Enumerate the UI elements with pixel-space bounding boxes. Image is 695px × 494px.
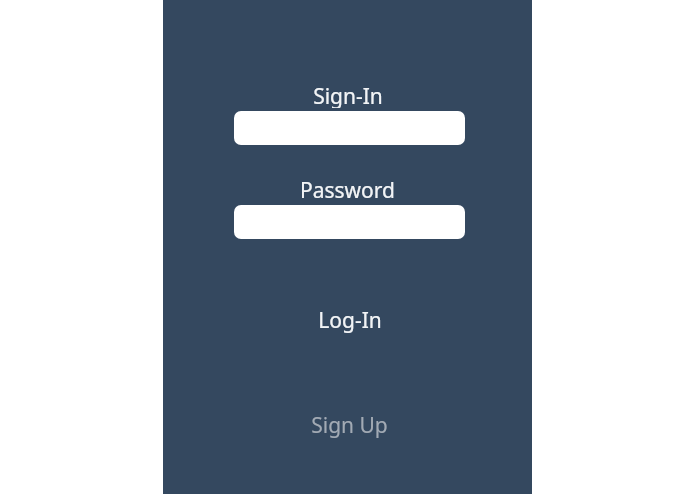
staticText: Sign-In bbox=[313, 82, 383, 108]
staticText: Log-In bbox=[318, 306, 382, 335]
button[interactable]: Log-In bbox=[234, 304, 465, 336]
button[interactable]: Sign Up bbox=[234, 409, 465, 441]
staticText: Sign Up bbox=[311, 411, 388, 440]
button[interactable]: Sign-In field bbox=[234, 111, 465, 145]
button[interactable]: Password field bbox=[234, 205, 465, 239]
staticText: Password bbox=[300, 176, 395, 202]
